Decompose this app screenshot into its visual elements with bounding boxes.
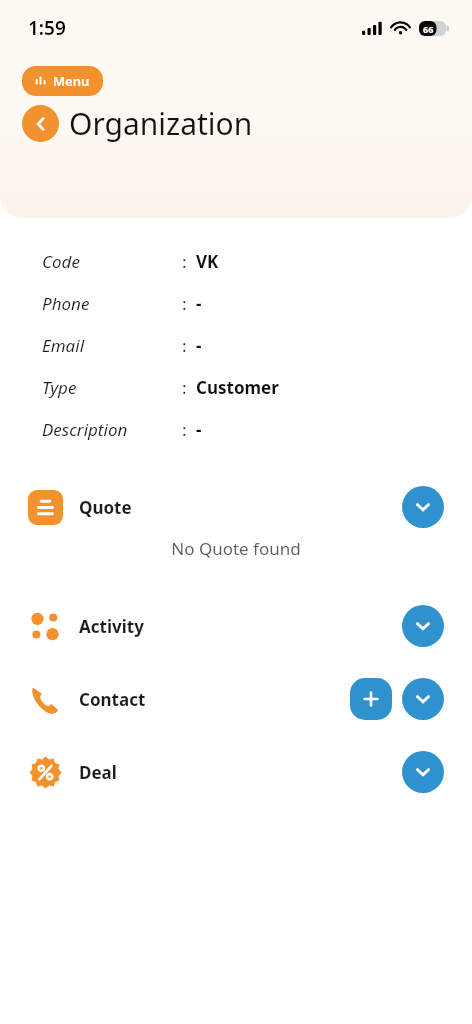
button[interactable]: Expand	[402, 486, 444, 528]
button[interactable]: Quote	[14, 477, 458, 584]
staticText: Activity	[79, 615, 144, 638]
staticText: VK	[196, 250, 219, 273]
staticText: Code	[42, 250, 80, 273]
button[interactable]: Activity	[14, 595, 458, 657]
staticText: Quote	[79, 496, 132, 519]
button[interactable]: Contact	[14, 668, 458, 730]
staticText: :	[182, 250, 187, 273]
button[interactable]: Expand	[402, 678, 444, 720]
staticText: 1:59	[28, 15, 66, 41]
staticText: Deal	[79, 761, 117, 784]
staticText: Description	[42, 418, 128, 441]
staticText: Contact	[79, 688, 146, 711]
staticText: -	[196, 418, 202, 441]
staticText: :	[182, 292, 187, 315]
staticText: No Quote found	[14, 537, 458, 560]
button[interactable]: Add contact	[350, 678, 392, 720]
staticText: Menu	[53, 72, 90, 90]
button[interactable]: Menu	[22, 66, 103, 96]
staticText: Email	[42, 334, 85, 357]
staticText: Customer	[196, 376, 279, 399]
button[interactable]: Expand	[402, 751, 444, 793]
staticText: -	[196, 292, 202, 315]
staticText: :	[182, 376, 187, 399]
staticText: Type	[42, 376, 77, 399]
staticText: 66	[423, 23, 434, 35]
staticText: Organization	[69, 103, 253, 144]
staticText: :	[182, 334, 187, 357]
button[interactable]: Deal	[14, 741, 458, 803]
staticText: :	[182, 418, 187, 441]
staticText: Phone	[42, 292, 90, 315]
button[interactable]: Expand	[402, 605, 444, 647]
staticText: -	[196, 334, 202, 357]
button[interactable]: Back	[22, 105, 59, 142]
